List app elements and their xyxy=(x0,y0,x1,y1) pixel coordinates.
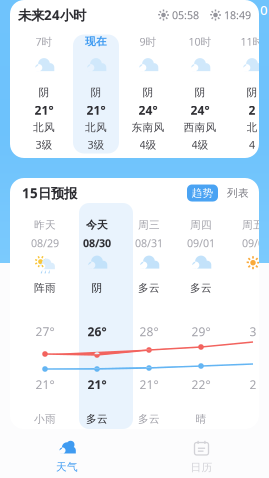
staticText: 24° xyxy=(138,102,157,118)
staticText: 昨天 xyxy=(34,218,56,231)
button[interactable]: 今天 xyxy=(71,209,123,429)
staticText: 多云 xyxy=(190,281,212,294)
staticText: 08/30 xyxy=(83,236,111,250)
staticText: 08/31 xyxy=(135,236,163,250)
staticText: 7时 xyxy=(35,34,52,49)
staticText: 日历 xyxy=(190,461,212,474)
staticText: 北风 xyxy=(33,121,55,134)
button[interactable]: 9时 xyxy=(122,28,174,154)
staticText: 东南风 xyxy=(131,121,164,134)
staticText: 10时 xyxy=(188,34,211,49)
staticText: 21° xyxy=(87,376,106,392)
staticText: 西南风 xyxy=(183,121,216,134)
staticText: 2 xyxy=(248,102,255,118)
staticText: 21° xyxy=(139,376,158,392)
staticText: 阴 xyxy=(90,86,101,99)
staticText: 4级 xyxy=(139,137,156,152)
staticText: 29° xyxy=(191,323,210,339)
staticText: 3 xyxy=(249,323,256,339)
staticText: 21° xyxy=(34,102,53,118)
staticText: 周三 xyxy=(138,218,160,231)
button[interactable]: 昨天 xyxy=(19,209,71,429)
staticText: 2 xyxy=(249,376,256,392)
button[interactable]: 日历 xyxy=(134,436,269,478)
staticText: 晴 xyxy=(195,412,206,425)
staticText: 15日预报 xyxy=(22,184,77,202)
staticText: 北风 xyxy=(85,121,107,134)
button[interactable]: 11时 xyxy=(226,28,269,154)
staticText: 多云 xyxy=(86,412,108,425)
button[interactable]: 7时 xyxy=(18,28,70,154)
button[interactable]: 周五 xyxy=(227,209,269,429)
staticText: 多云 xyxy=(138,412,160,425)
staticText: 阴 xyxy=(246,86,257,99)
staticText: 3级 xyxy=(35,137,52,152)
staticText: 22° xyxy=(191,376,210,392)
button[interactable]: 天气 xyxy=(0,436,134,478)
staticText: 18:49 xyxy=(224,8,251,22)
staticText: 11时 xyxy=(240,34,263,49)
button[interactable]: 现在 xyxy=(70,28,122,154)
button[interactable]: 10时 xyxy=(174,28,226,154)
staticText: 4级 xyxy=(191,137,208,152)
staticText: 3级 xyxy=(87,137,104,152)
staticText: 阴 xyxy=(91,281,102,294)
staticText: 未来24小时 xyxy=(18,6,86,24)
staticText: 周五 xyxy=(242,218,264,231)
staticText: 今天 xyxy=(86,218,108,231)
staticText: 趋势 xyxy=(191,186,213,199)
staticText: 05:58 xyxy=(172,8,199,22)
staticText: 周四 xyxy=(190,218,212,231)
staticText: 小雨 xyxy=(34,412,56,425)
staticText: 24° xyxy=(190,102,209,118)
staticText: 4 xyxy=(249,137,255,152)
staticText: 28° xyxy=(139,323,158,339)
staticText: 多云 xyxy=(138,281,160,294)
button[interactable]: 趋势 xyxy=(187,184,218,201)
staticText: 0 xyxy=(260,1,268,19)
staticText: 阴 xyxy=(194,86,205,99)
button[interactable]: 周四 xyxy=(175,209,227,429)
staticText: 27° xyxy=(35,323,54,339)
staticText: 北 xyxy=(246,121,257,134)
staticText: 09/01 xyxy=(187,236,215,250)
staticText: 列表 xyxy=(227,186,249,199)
staticText: 26° xyxy=(87,323,106,339)
staticText: 9时 xyxy=(139,34,156,49)
staticText: 天气 xyxy=(56,460,78,473)
staticText: 21° xyxy=(86,102,105,118)
staticText: 阴 xyxy=(38,86,49,99)
staticText: 现在 xyxy=(85,35,107,48)
staticText: 09/0 xyxy=(242,236,264,250)
staticText: 阵雨 xyxy=(34,281,56,294)
staticText: 21° xyxy=(35,376,54,392)
button[interactable]: 列表 xyxy=(227,186,249,199)
staticText: 阴 xyxy=(142,86,153,99)
button[interactable]: 周三 xyxy=(123,209,175,429)
staticText: 08/29 xyxy=(31,236,59,250)
